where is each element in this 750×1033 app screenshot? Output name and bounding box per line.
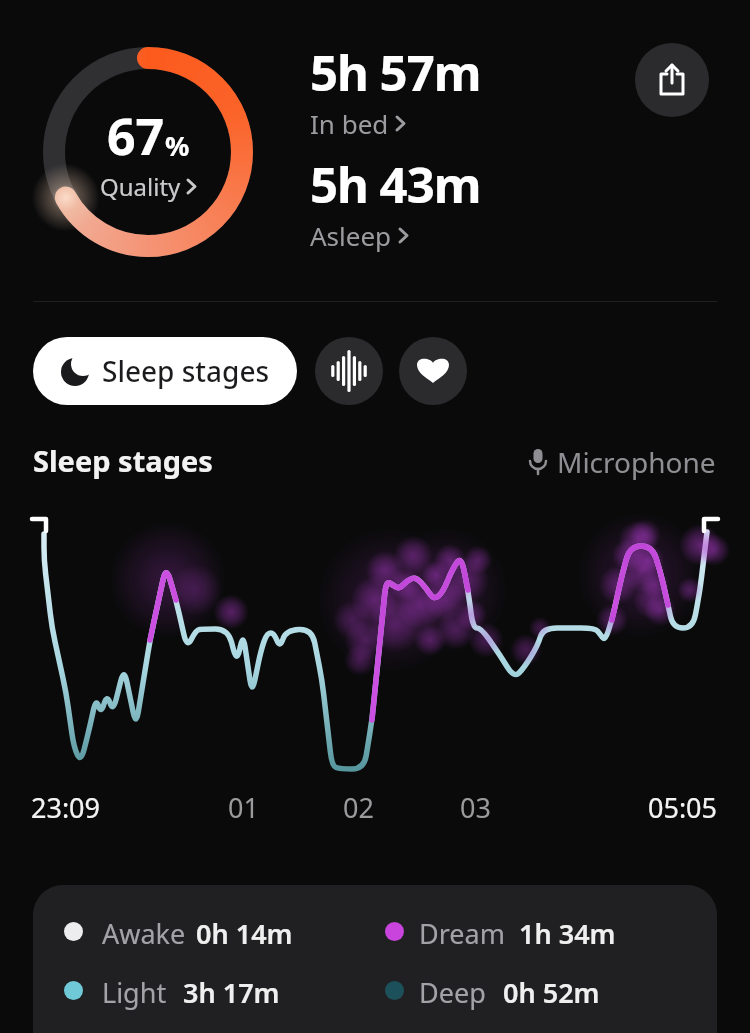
staticText: 1h 34m: [519, 915, 616, 952]
staticText: 0h 14m: [196, 915, 293, 952]
staticText: Asleep: [310, 218, 392, 253]
staticText: Deep: [419, 974, 486, 1011]
button[interactable]: [315, 337, 383, 405]
staticText: Awake: [102, 915, 186, 952]
staticText: 0h 52m: [503, 974, 600, 1011]
staticText: 02: [343, 789, 374, 826]
staticText: Dream: [419, 915, 505, 952]
staticText: Light: [102, 974, 167, 1011]
staticText: 3h 17m: [183, 974, 280, 1011]
staticText: 03: [460, 789, 491, 826]
button[interactable]: Asleep: [310, 218, 408, 253]
button[interactable]: [399, 337, 467, 405]
staticText: 05:05: [648, 789, 718, 826]
staticText: 01: [228, 789, 259, 826]
staticText: In bed: [310, 106, 389, 141]
staticText: 23:09: [31, 789, 101, 826]
button[interactable]: Sleep stages: [33, 337, 297, 405]
staticText: Sleep stages: [33, 441, 213, 480]
button[interactable]: Microphone: [527, 443, 716, 481]
button[interactable]: [635, 43, 709, 117]
staticText: Quality: [100, 170, 181, 203]
button[interactable]: 67: [100, 102, 196, 203]
button[interactable]: In bed: [310, 106, 405, 141]
staticText: Microphone: [557, 443, 716, 481]
staticText: %: [165, 127, 190, 164]
staticText: Sleep stages: [102, 352, 270, 390]
staticText: 5h 43m: [310, 151, 481, 218]
staticText: 5h 57m: [310, 39, 481, 106]
staticText: 67: [107, 102, 165, 170]
